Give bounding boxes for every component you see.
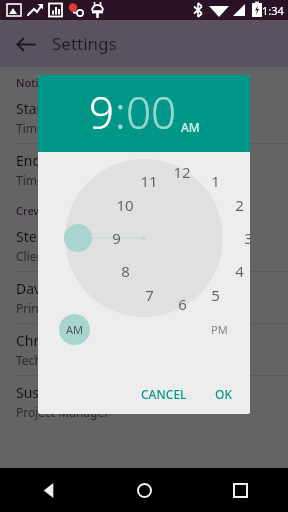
- staticText: 5: [211, 285, 220, 305]
- staticText: Project Manager: [16, 404, 110, 420]
- button[interactable]: 5: [177, 285, 250, 305]
- button[interactable]: 00: [126, 82, 177, 142]
- button[interactable]: OK: [207, 380, 240, 408]
- button[interactable]: 8: [87, 261, 163, 281]
- button[interactable]: AM: [181, 119, 200, 135]
- staticText: 7: [145, 285, 154, 305]
- staticText: 6: [178, 294, 187, 314]
- button[interactable]: 2: [201, 195, 250, 215]
- staticText: 4: [235, 261, 244, 281]
- staticText: OK: [215, 386, 232, 402]
- staticText: 9: [112, 228, 121, 248]
- button[interactable]: 11: [111, 171, 187, 191]
- button[interactable]: 10: [87, 195, 163, 215]
- staticText: End Time: [16, 151, 78, 170]
- button[interactable]: Back: [8, 27, 42, 61]
- staticText: 9: [89, 82, 115, 142]
- staticText: Client: [16, 248, 49, 264]
- staticText: Susan Mae Kaiser: [16, 383, 132, 402]
- staticText: 3: [244, 228, 250, 248]
- button[interactable]: CANCEL: [133, 380, 195, 408]
- button[interactable]: Start Time: [0, 92, 288, 143]
- staticText: Start Time: [16, 99, 84, 118]
- staticText: Technician: [16, 352, 76, 368]
- button[interactable]: David Wong: [0, 272, 288, 323]
- staticText: 12: [173, 162, 191, 182]
- button[interactable]: 9: [78, 228, 154, 248]
- staticText: Settings: [52, 32, 117, 55]
- button[interactable]: 12: [144, 162, 220, 182]
- button[interactable]: AM: [59, 314, 90, 345]
- button[interactable]: 3: [210, 228, 250, 248]
- staticText: Notifications: [16, 75, 84, 90]
- button[interactable]: PM: [204, 314, 235, 345]
- staticText: 2: [235, 195, 244, 215]
- staticText: 1:34: [262, 3, 284, 18]
- staticText: CANCEL: [141, 386, 187, 402]
- staticText: PM: [211, 322, 228, 337]
- button[interactable]: 9: [89, 82, 115, 142]
- button[interactable]: Home: [96, 468, 192, 512]
- button[interactable]: Chris Pine: [0, 324, 288, 375]
- staticText: AM: [181, 119, 200, 135]
- button[interactable]: 1: [177, 171, 250, 191]
- staticText: Time: [16, 172, 44, 188]
- staticText: Time: [16, 120, 44, 136]
- staticText: 1: [211, 171, 220, 191]
- staticText: 8: [121, 261, 130, 281]
- button[interactable]: 4: [201, 261, 250, 281]
- staticText: David Wong: [16, 279, 96, 298]
- staticText: Stephen Lee: [16, 227, 98, 246]
- staticText: 11: [140, 171, 158, 191]
- button[interactable]: Stephen Lee: [0, 220, 288, 271]
- staticText: Crew: [16, 203, 43, 218]
- button[interactable]: Recents: [192, 468, 288, 512]
- button[interactable]: 6: [144, 294, 220, 314]
- button[interactable]: Back: [0, 468, 96, 512]
- button[interactable]: End Time: [0, 144, 288, 195]
- staticText: 00: [126, 82, 177, 142]
- staticText: AM: [66, 322, 84, 337]
- staticText: Principal: [16, 300, 65, 316]
- staticText: Chris Pine: [16, 331, 82, 350]
- button[interactable]: Susan Mae Kaiser: [0, 376, 288, 427]
- staticText: 10: [116, 195, 134, 215]
- staticText: :: [115, 82, 126, 142]
- button[interactable]: 7: [111, 285, 187, 305]
